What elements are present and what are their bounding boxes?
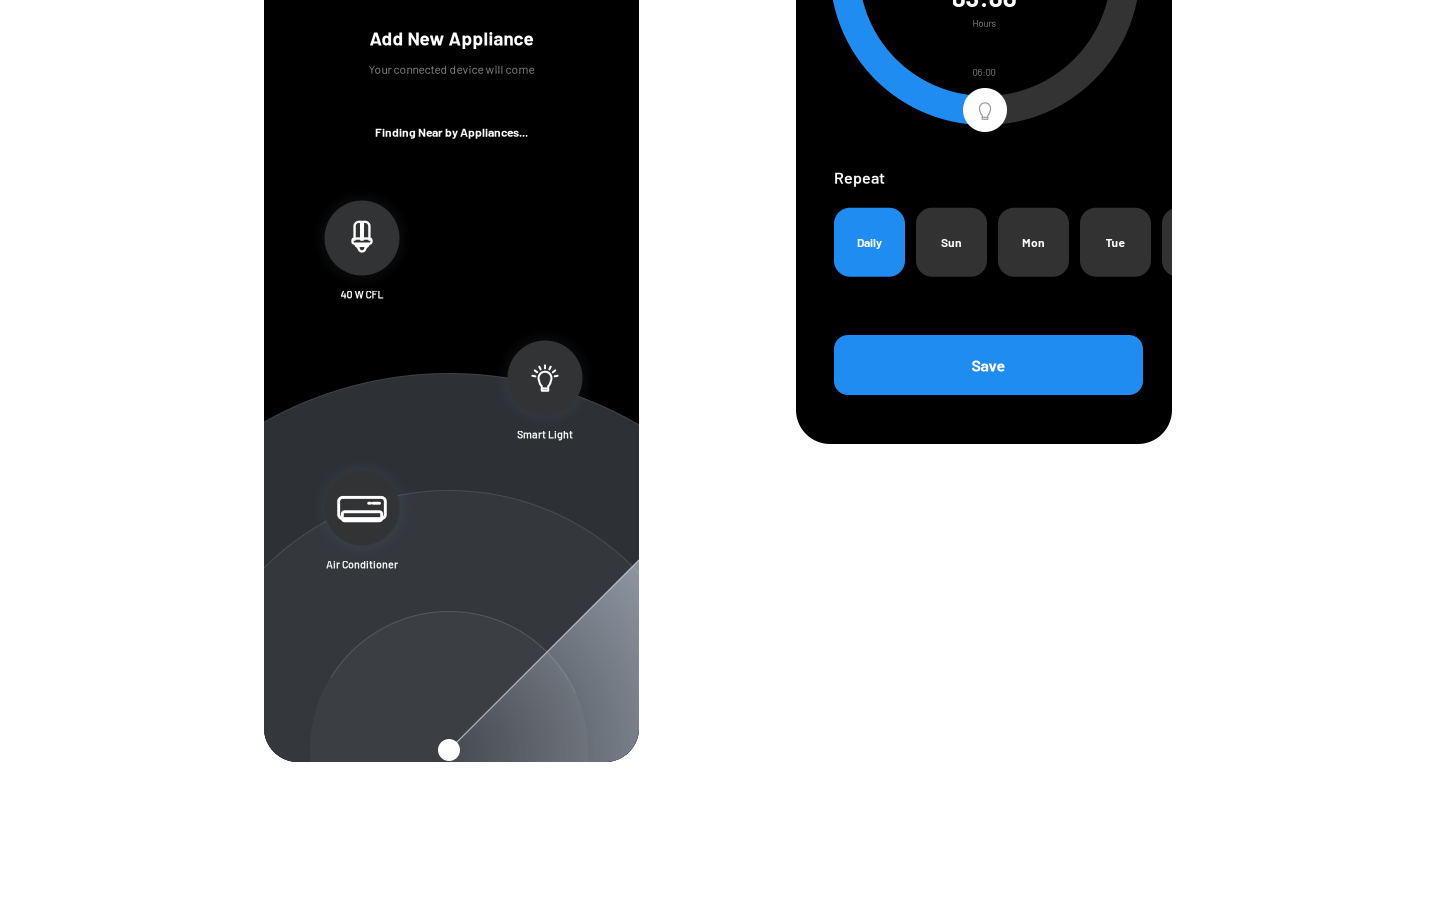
button[interactable]: Wed xyxy=(1162,208,1233,277)
staticText: Finding Near by Appliances... xyxy=(375,125,528,139)
button[interactable]: 40 W CFL xyxy=(313,189,411,300)
button[interactable]: Tue xyxy=(1080,208,1151,277)
staticText: Sun xyxy=(941,235,962,249)
button[interactable]: Save xyxy=(834,335,1143,395)
staticText: Mon xyxy=(1022,235,1045,249)
staticText: 06:00 xyxy=(972,67,995,77)
staticText: 40 W CFL xyxy=(340,288,383,300)
staticText: Hours xyxy=(972,18,995,28)
staticText: Your connected device will come xyxy=(368,62,534,76)
button[interactable]: Daily xyxy=(834,208,905,277)
staticText: Add New Appliance xyxy=(369,27,533,49)
button[interactable]: Smart Light xyxy=(496,329,594,440)
button[interactable]: Mon xyxy=(998,208,1069,277)
staticText: Air Conditioner xyxy=(326,558,398,570)
staticText: Tue xyxy=(1105,235,1125,249)
button[interactable]: Sun xyxy=(916,208,987,277)
staticText: Repeat xyxy=(834,168,885,187)
staticText: Smart Light xyxy=(517,428,573,440)
staticText: 03:00 xyxy=(951,0,1016,12)
button[interactable]: Air Conditioner xyxy=(313,459,411,570)
staticText: Save xyxy=(971,356,1005,374)
staticText: Daily xyxy=(857,235,882,249)
